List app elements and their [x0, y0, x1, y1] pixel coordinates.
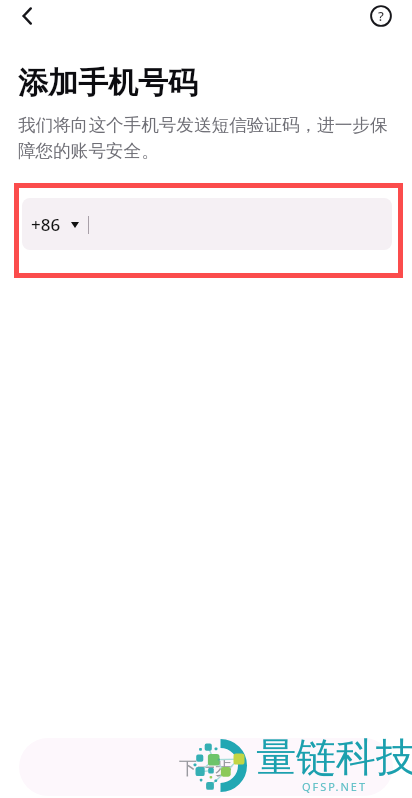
staticText: +86 [31, 213, 61, 236]
staticText: QFSP.NET [302, 779, 368, 794]
staticText: 添加手机号码 [18, 64, 198, 102]
staticText: 我们将向这个手机号发送短信验证码，进一步保 障您的账号安全。 [18, 114, 388, 163]
staticText: ? [378, 7, 384, 25]
button[interactable]: Back [4, 0, 42, 32]
staticText: 量链科技 [256, 732, 412, 782]
button[interactable]: +86 [22, 198, 392, 250]
button[interactable]: Help [364, 0, 398, 32]
staticText: 下一步 [179, 757, 233, 780]
button[interactable]: 下一步 [19, 738, 393, 796]
